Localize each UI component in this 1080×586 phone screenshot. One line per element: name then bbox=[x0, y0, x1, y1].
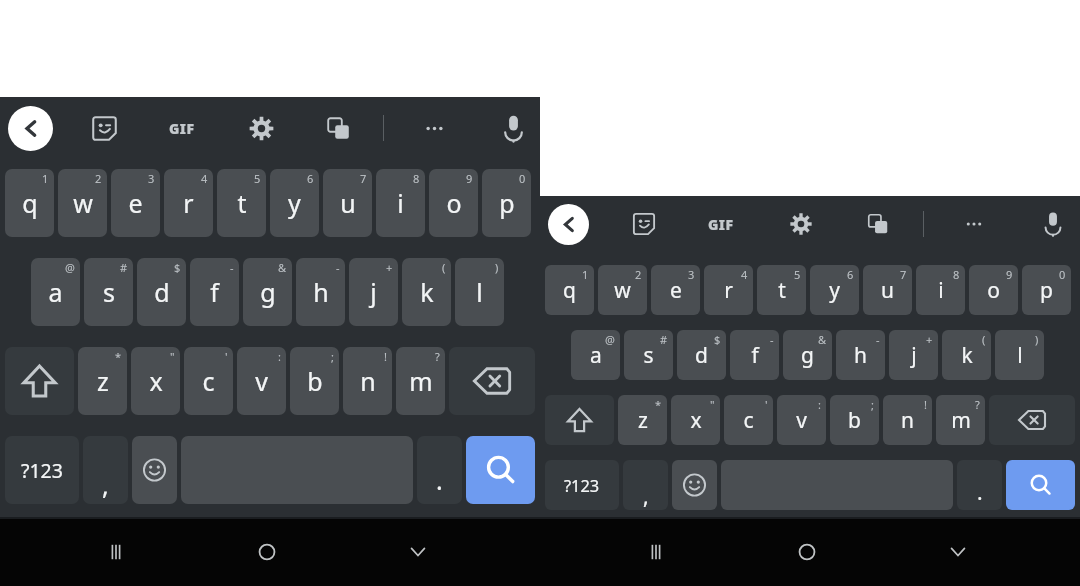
staticText: $ bbox=[174, 260, 181, 275]
button[interactable]: g bbox=[783, 330, 832, 380]
button[interactable]: d bbox=[677, 330, 726, 380]
button[interactable]: t bbox=[217, 169, 266, 237]
button[interactable]: e bbox=[651, 265, 700, 315]
button[interactable]: c bbox=[724, 395, 773, 445]
button[interactable]: Emoji bbox=[132, 436, 177, 504]
button[interactable]: h bbox=[836, 330, 885, 380]
button[interactable]: w bbox=[598, 265, 647, 315]
button[interactable]: c bbox=[184, 347, 233, 415]
button[interactable]: a bbox=[571, 330, 620, 380]
button[interactable]: v bbox=[237, 347, 286, 415]
staticText: ; bbox=[871, 397, 874, 412]
button[interactable]: Back bbox=[8, 106, 53, 151]
button[interactable]: f bbox=[190, 258, 239, 326]
button[interactable]: w bbox=[58, 169, 107, 237]
button[interactable]: More options bbox=[952, 202, 996, 246]
button[interactable]: o bbox=[969, 265, 1018, 315]
button[interactable]: GIF bbox=[699, 202, 743, 246]
button[interactable]: Hide keyboard bbox=[934, 528, 982, 576]
button[interactable]: s bbox=[84, 258, 133, 326]
button[interactable]: Recent apps bbox=[92, 528, 140, 576]
button[interactable]: . bbox=[417, 436, 462, 504]
button[interactable]: n bbox=[883, 395, 932, 445]
button[interactable]: s bbox=[624, 330, 673, 380]
button[interactable]: GIF bbox=[157, 104, 206, 153]
button[interactable]: , bbox=[83, 436, 128, 504]
button[interactable]: h bbox=[296, 258, 345, 326]
button[interactable]: Shift bbox=[5, 347, 74, 415]
button[interactable]: m bbox=[396, 347, 445, 415]
button[interactable]: g bbox=[243, 258, 292, 326]
staticText: . bbox=[977, 478, 983, 507]
button[interactable]: Backspace bbox=[989, 395, 1075, 445]
button[interactable]: ?123 bbox=[545, 460, 619, 510]
button[interactable]: u bbox=[863, 265, 912, 315]
button[interactable]: n bbox=[343, 347, 392, 415]
button[interactable]: m bbox=[936, 395, 985, 445]
button[interactable]: k bbox=[402, 258, 451, 326]
button[interactable]: Voice input bbox=[489, 104, 538, 153]
button[interactable]: z bbox=[618, 395, 667, 445]
staticText: ! bbox=[384, 349, 387, 364]
button[interactable]: Home bbox=[783, 528, 831, 576]
button[interactable]: p bbox=[1022, 265, 1071, 315]
button[interactable]: z bbox=[78, 347, 127, 415]
button[interactable]: Stickers bbox=[80, 104, 129, 153]
button[interactable]: v bbox=[777, 395, 826, 445]
button[interactable]: Voice input bbox=[1031, 202, 1075, 246]
staticText: i bbox=[938, 276, 944, 305]
button[interactable]: b bbox=[830, 395, 879, 445]
staticText: ; bbox=[331, 349, 334, 364]
button[interactable]: Settings bbox=[237, 104, 286, 153]
button[interactable]: Emoji bbox=[672, 460, 717, 510]
button[interactable]: a bbox=[31, 258, 80, 326]
button[interactable]: j bbox=[349, 258, 398, 326]
button[interactable]: f bbox=[730, 330, 779, 380]
button[interactable]: r bbox=[704, 265, 753, 315]
button[interactable]: e bbox=[111, 169, 160, 237]
button[interactable]: Recent apps bbox=[632, 528, 680, 576]
button[interactable]: l bbox=[995, 330, 1044, 380]
button[interactable]: o bbox=[429, 169, 478, 237]
button[interactable]: j bbox=[889, 330, 938, 380]
button[interactable]: y bbox=[810, 265, 859, 315]
button[interactable]: r bbox=[164, 169, 213, 237]
staticText: ) bbox=[1035, 332, 1039, 347]
button[interactable]: p bbox=[482, 169, 531, 237]
button[interactable]: , bbox=[623, 460, 668, 510]
staticText: c bbox=[743, 406, 754, 435]
button[interactable]: Home bbox=[243, 528, 291, 576]
button[interactable]: i bbox=[376, 169, 425, 237]
button[interactable]: k bbox=[942, 330, 991, 380]
button[interactable]: x bbox=[131, 347, 180, 415]
button[interactable]: x bbox=[671, 395, 720, 445]
button[interactable]: q bbox=[545, 265, 594, 315]
staticText: f bbox=[210, 275, 219, 309]
staticText: @ bbox=[605, 332, 615, 347]
button[interactable]: Stickers bbox=[622, 202, 666, 246]
button[interactable]: ?123 bbox=[5, 436, 79, 504]
button[interactable]: l bbox=[455, 258, 504, 326]
staticText: + bbox=[926, 332, 933, 347]
button[interactable]: b bbox=[290, 347, 339, 415]
button[interactable]: Shift bbox=[545, 395, 614, 445]
button[interactable]: Settings bbox=[779, 202, 823, 246]
button[interactable]: . bbox=[957, 460, 1002, 510]
button[interactable]: u bbox=[323, 169, 372, 237]
button[interactable]: t bbox=[757, 265, 806, 315]
button[interactable]: Translate bbox=[856, 202, 900, 246]
button[interactable]: q bbox=[5, 169, 54, 237]
button[interactable]: i bbox=[916, 265, 965, 315]
button[interactable]: More options bbox=[410, 104, 459, 153]
button[interactable]: d bbox=[137, 258, 186, 326]
staticText: # bbox=[120, 260, 128, 275]
button[interactable]: Search bbox=[1006, 460, 1075, 510]
button[interactable]: Search bbox=[466, 436, 535, 504]
button[interactable]: Back bbox=[548, 204, 589, 245]
button[interactable]: y bbox=[270, 169, 319, 237]
button[interactable]: Translate bbox=[314, 104, 363, 153]
button[interactable]: Backspace bbox=[449, 347, 535, 415]
button[interactable]: Hide keyboard bbox=[394, 528, 442, 576]
